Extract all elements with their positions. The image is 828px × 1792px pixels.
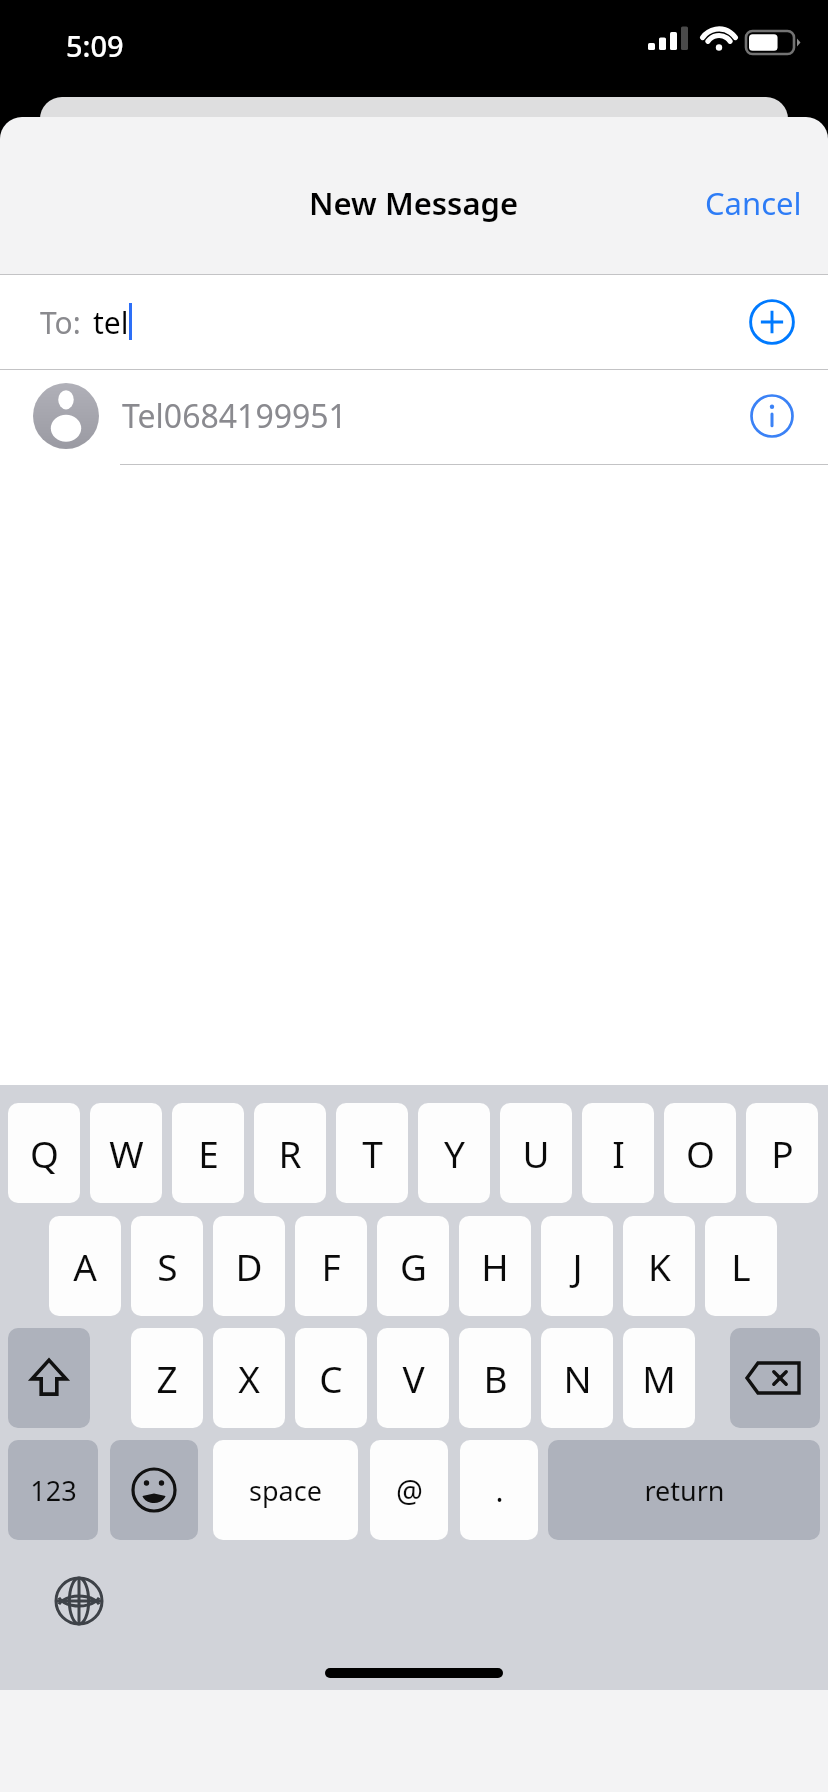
button[interactable]: O (664, 1103, 736, 1203)
staticText: 5:09 (66, 26, 124, 65)
button[interactable]: E (172, 1103, 244, 1203)
staticText: T (362, 1128, 383, 1178)
button[interactable]: G (377, 1216, 449, 1316)
staticText: Z (156, 1353, 178, 1403)
staticText: Q (30, 1128, 59, 1178)
staticText: . (495, 1470, 504, 1511)
staticText: Tel0684199951 (122, 394, 347, 438)
staticText: @ (396, 1470, 423, 1511)
staticText: J (572, 1241, 583, 1291)
button[interactable]: J (541, 1216, 613, 1316)
staticText: R (278, 1128, 302, 1178)
staticText: P (771, 1128, 794, 1178)
staticText: G (400, 1241, 427, 1291)
button[interactable]: . (460, 1440, 538, 1540)
button[interactable]: Numbers (8, 1440, 98, 1540)
button[interactable]: Shift (8, 1328, 90, 1428)
button[interactable]: @ (370, 1440, 448, 1540)
button[interactable]: Add contact (744, 294, 800, 350)
button[interactable]: K (623, 1216, 695, 1316)
button[interactable]: M (623, 1328, 695, 1428)
staticText: E (198, 1128, 219, 1178)
button[interactable]: X (213, 1328, 285, 1428)
staticText: X (238, 1353, 260, 1403)
staticText: B (483, 1353, 508, 1403)
staticText: V (402, 1353, 425, 1403)
button[interactable]: F (295, 1216, 367, 1316)
staticText: return (644, 1472, 725, 1509)
button[interactable]: I (582, 1103, 654, 1203)
button[interactable]: C (295, 1328, 367, 1428)
button[interactable]: B (459, 1328, 531, 1428)
button[interactable]: U (500, 1103, 572, 1203)
button[interactable]: Emoji (110, 1440, 198, 1540)
staticText: F (321, 1241, 341, 1291)
staticText: M (642, 1353, 676, 1403)
staticText: C (319, 1353, 343, 1403)
button[interactable]: Switch keyboard (50, 1572, 108, 1630)
button[interactable]: Contact info (744, 388, 800, 444)
button[interactable]: D (213, 1216, 285, 1316)
button[interactable]: Backspace (730, 1328, 820, 1428)
staticText: W (109, 1128, 144, 1178)
staticText: N (563, 1353, 592, 1403)
button[interactable]: W (90, 1103, 162, 1203)
staticText: space (249, 1472, 322, 1509)
staticText: Y (444, 1128, 465, 1178)
staticText: K (648, 1241, 671, 1291)
staticText: D (235, 1241, 263, 1291)
staticText: tel (93, 302, 129, 343)
button[interactable]: Y (418, 1103, 490, 1203)
button[interactable]: Tel0684199951 (0, 370, 828, 465)
button[interactable]: A (49, 1216, 121, 1316)
button[interactable]: L (705, 1216, 777, 1316)
staticText: To: (40, 302, 81, 343)
staticText: A (73, 1241, 97, 1291)
staticText: U (522, 1128, 550, 1178)
button[interactable]: T (336, 1103, 408, 1203)
button[interactable]: S (131, 1216, 203, 1316)
staticText: H (481, 1241, 509, 1291)
button[interactable]: Q (8, 1103, 80, 1203)
staticText: O (686, 1128, 715, 1178)
button[interactable]: space (213, 1440, 358, 1540)
button[interactable]: Return (548, 1440, 820, 1540)
button[interactable]: N (541, 1328, 613, 1428)
staticText: New Message (309, 182, 519, 224)
staticText: I (612, 1128, 625, 1178)
staticText: 123 (30, 1472, 77, 1509)
button[interactable]: V (377, 1328, 449, 1428)
staticText: Cancel (705, 182, 802, 224)
button[interactable]: Z (131, 1328, 203, 1428)
button[interactable]: R (254, 1103, 326, 1203)
button[interactable]: To: (0, 275, 828, 369)
button[interactable]: P (746, 1103, 818, 1203)
staticText: L (731, 1241, 751, 1291)
staticText: S (157, 1241, 178, 1291)
button[interactable]: H (459, 1216, 531, 1316)
button[interactable]: Cancel (679, 170, 828, 236)
